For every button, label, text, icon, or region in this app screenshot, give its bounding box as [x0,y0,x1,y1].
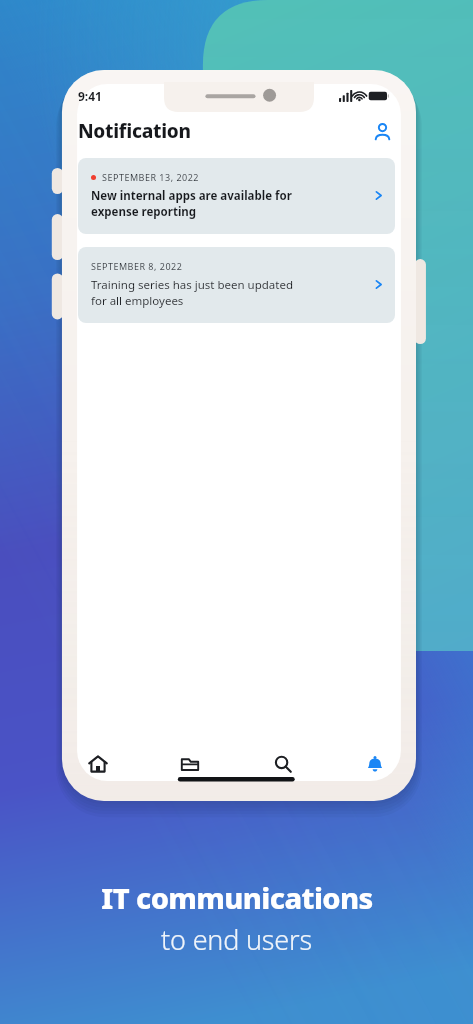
staticText: IT communications [101,878,373,917]
button[interactable]: Search [263,744,303,784]
staticText: 9:41 [78,88,102,104]
staticText: SEPTEMBER 13, 2022 [102,171,199,183]
button[interactable]: SEPTEMBER 8, 2022 [78,247,395,323]
button[interactable]: Files [170,744,210,784]
staticText: expense reporting [91,204,197,220]
button[interactable]: Profile [369,118,395,144]
button[interactable]: SEPTEMBER 13, 2022 [78,158,395,234]
staticText: to end users [161,921,312,958]
staticText: SEPTEMBER 8, 2022 [91,260,183,272]
staticText: for all employees [91,293,184,309]
button[interactable]: Home [78,744,118,784]
staticText: Notification [78,118,191,144]
button[interactable]: Notifications [355,744,395,784]
staticText: Training series has just been updated [91,277,294,293]
staticText: New internal apps are available for [91,188,292,204]
